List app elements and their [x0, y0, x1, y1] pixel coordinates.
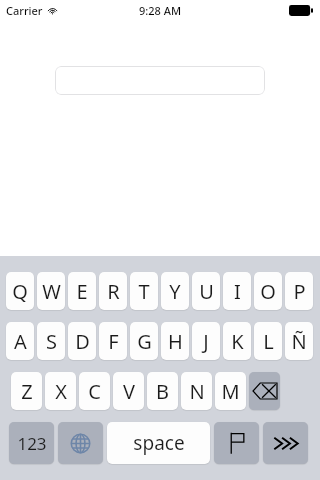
staticText: X — [55, 378, 67, 405]
button[interactable]: Z — [11, 372, 42, 410]
button[interactable]: P — [285, 272, 313, 310]
staticText: 123 — [17, 432, 47, 455]
button[interactable]: U — [192, 272, 220, 310]
staticText: D — [75, 328, 90, 355]
button[interactable]: Y — [161, 272, 189, 310]
button[interactable] — [55, 66, 265, 95]
button[interactable]: A — [6, 322, 34, 360]
button[interactable]: D — [68, 322, 96, 360]
button[interactable]: H — [161, 322, 189, 360]
button[interactable]: Ñ — [285, 322, 313, 360]
staticText: U — [199, 278, 214, 305]
button[interactable]: E — [68, 272, 96, 310]
button[interactable]: K — [223, 322, 251, 360]
staticText: space — [133, 430, 185, 456]
staticText: P — [293, 278, 306, 305]
button[interactable]: W — [37, 272, 65, 310]
staticText: S — [46, 328, 57, 355]
staticText: K — [231, 328, 244, 355]
staticText: L — [263, 328, 274, 355]
staticText: N — [189, 378, 205, 405]
button[interactable]: V — [113, 372, 144, 410]
button[interactable]: Flag — [214, 422, 259, 464]
staticText: R — [107, 278, 120, 305]
button[interactable]: G — [130, 322, 158, 360]
staticText: Q — [12, 278, 28, 305]
button[interactable]: Backspace — [249, 372, 280, 410]
staticText: Ñ — [291, 328, 307, 355]
staticText: E — [76, 278, 88, 305]
button[interactable]: L — [254, 322, 282, 360]
staticText: Carrier — [6, 3, 43, 18]
staticText: A — [14, 328, 27, 355]
staticText: T — [138, 278, 150, 305]
staticText: V — [123, 378, 135, 405]
staticText: F — [108, 328, 119, 355]
button[interactable]: Q — [6, 272, 34, 310]
staticText: C — [88, 378, 101, 405]
button[interactable]: O — [254, 272, 282, 310]
button[interactable]: M — [215, 372, 246, 410]
button[interactable]: Next keyboard — [58, 422, 103, 464]
staticText: W — [42, 278, 61, 305]
staticText: O — [260, 278, 276, 305]
button[interactable]: S — [37, 322, 65, 360]
button[interactable]: T — [130, 272, 158, 310]
button[interactable]: 123 — [9, 422, 54, 464]
staticText: 9:28 AM — [139, 3, 182, 18]
button[interactable]: Next — [263, 422, 308, 464]
button[interactable]: N — [181, 372, 212, 410]
button[interactable]: C — [79, 372, 110, 410]
button[interactable]: B — [147, 372, 178, 410]
button[interactable]: I — [223, 272, 251, 310]
staticText: M — [221, 378, 240, 405]
button[interactable]: space — [107, 422, 210, 464]
staticText: H — [168, 328, 183, 355]
button[interactable]: F — [99, 322, 127, 360]
staticText: Y — [169, 278, 181, 305]
staticText: I — [234, 278, 241, 305]
button[interactable]: R — [99, 272, 127, 310]
staticText: Z — [21, 378, 33, 405]
staticText: B — [156, 378, 169, 405]
staticText: J — [203, 328, 209, 355]
button[interactable]: J — [192, 322, 220, 360]
staticText: G — [137, 328, 152, 355]
button[interactable]: X — [45, 372, 76, 410]
